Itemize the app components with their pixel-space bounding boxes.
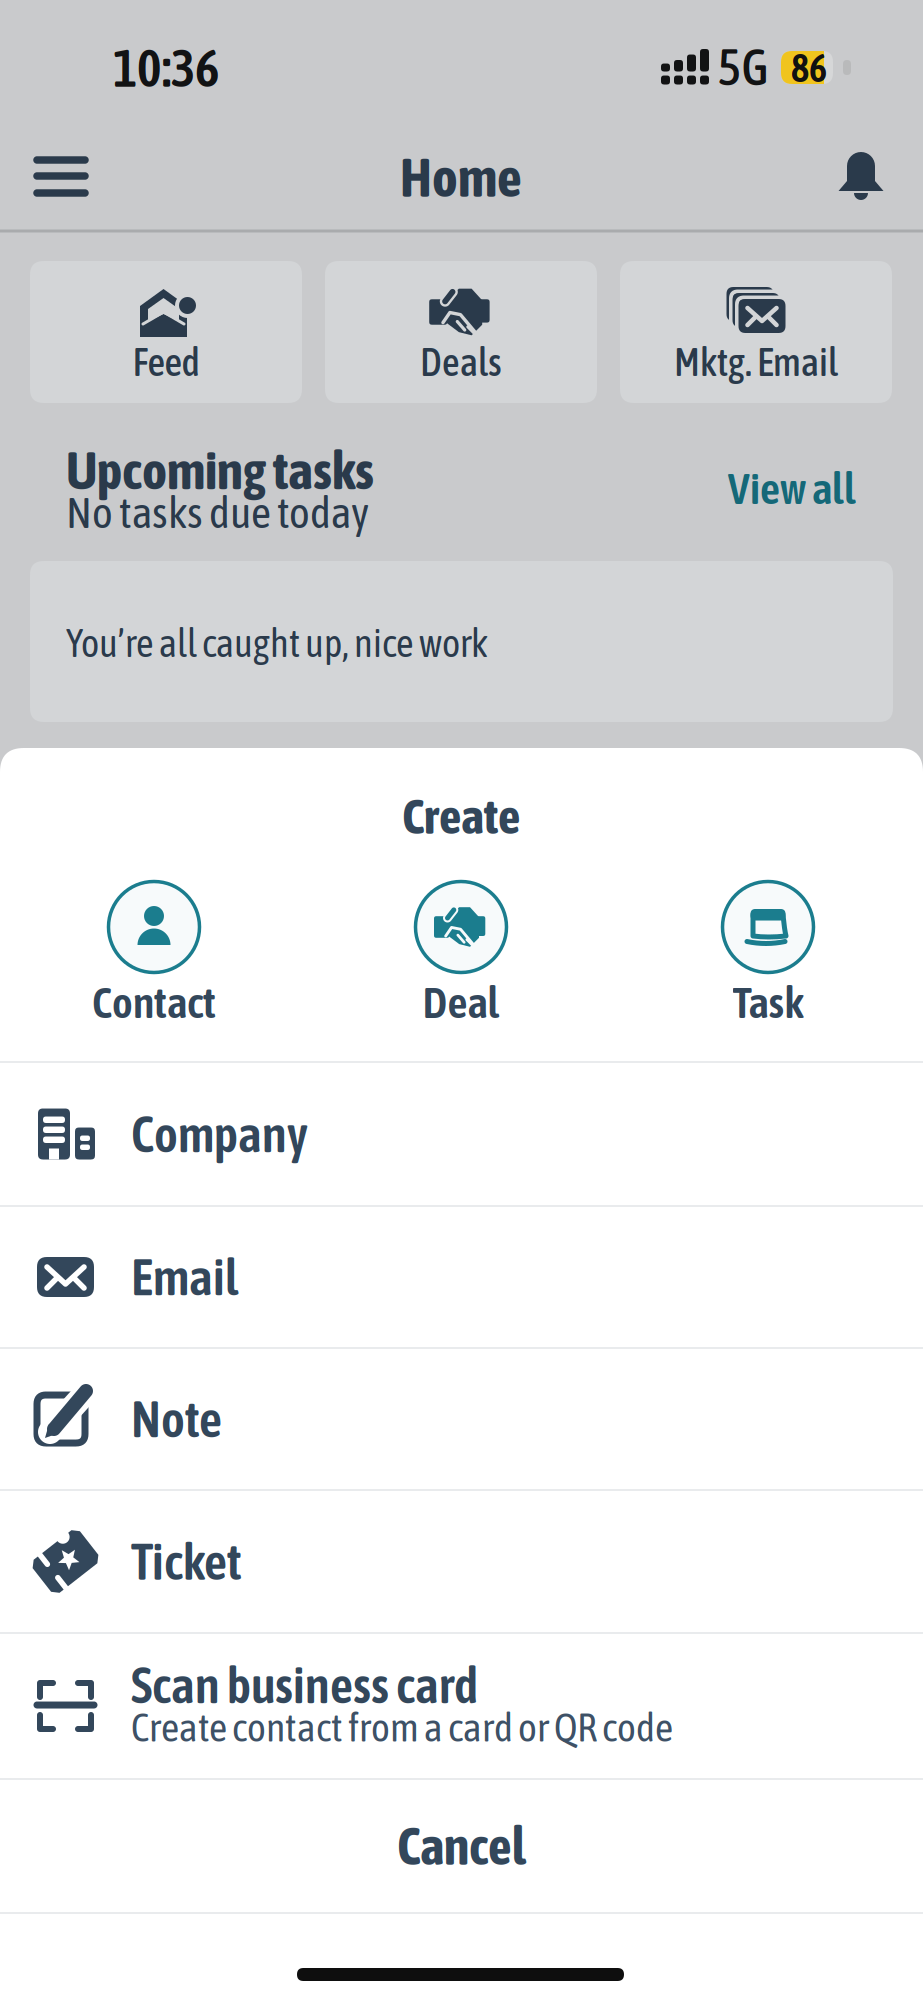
button[interactable]: Task (693, 878, 843, 1038)
staticText: Email (131, 1248, 238, 1306)
staticText: Task (732, 977, 803, 1027)
staticText: No tasks due today (66, 487, 369, 537)
staticText: Contact (92, 977, 216, 1027)
button[interactable]: Ticket (0, 1490, 923, 1633)
button[interactable]: Deals (325, 261, 597, 403)
staticText: View all (728, 463, 856, 513)
staticText: Mktg. Email (674, 340, 838, 384)
staticText: 86 (791, 46, 827, 90)
button[interactable]: Menu (26, 142, 96, 212)
staticText: Home (400, 146, 522, 208)
staticText: 10:36 (113, 38, 219, 98)
staticText: Feed (132, 340, 199, 384)
button[interactable]: Notifications (826, 141, 896, 211)
staticText: Deals (420, 340, 502, 384)
staticText: Create contact from a card or QR code (131, 1704, 673, 1750)
button[interactable]: Feed (30, 261, 302, 403)
staticText: You’re all caught up, nice work (66, 621, 488, 665)
staticText: Ticket (131, 1532, 242, 1591)
staticText: Company (131, 1105, 308, 1163)
staticText: Cancel (397, 1816, 526, 1876)
button[interactable]: Company (0, 1063, 923, 1205)
button[interactable]: Scan business card (0, 1633, 923, 1779)
staticText: 5G (717, 38, 768, 96)
staticText: Upcoming tasks (66, 439, 374, 500)
staticText: Scan business card (131, 1656, 478, 1714)
button[interactable]: Mktg. Email (620, 261, 892, 403)
button[interactable]: Deal (386, 878, 536, 1038)
staticText: Create (402, 788, 520, 844)
button[interactable]: Cancel (0, 1779, 923, 1913)
staticText: Deal (422, 977, 499, 1027)
button[interactable]: Email (0, 1206, 923, 1348)
button[interactable]: Contact (79, 878, 229, 1038)
button[interactable]: Note (0, 1348, 923, 1490)
button[interactable]: View all (702, 458, 882, 518)
staticText: Note (131, 1390, 222, 1448)
